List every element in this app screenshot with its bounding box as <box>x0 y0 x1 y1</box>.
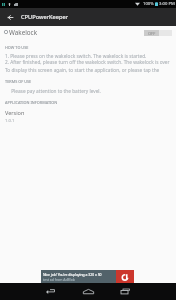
button[interactable]: Home <box>77 286 99 297</box>
staticText: To display this screen again, to start t… <box>5 67 173 73</box>
staticText: APPLICATION INFORMATION <box>5 100 58 105</box>
staticText: TERMS OF USE <box>5 79 32 84</box>
staticText: Wakelock <box>9 28 37 37</box>
staticText: CPUPowerKeeper <box>21 13 68 21</box>
button[interactable]: Navigate up <box>0 8 21 26</box>
staticText: Nice job! You're displaying a 320 x 50 <box>43 272 102 277</box>
button[interactable]: Nice job! You're displaying a 320 x 50 <box>41 270 134 283</box>
staticText: Version <box>5 109 25 116</box>
staticText: 3:00 PM <box>159 1 175 7</box>
button[interactable]: Back <box>41 286 61 297</box>
staticText: Please pay attention to the battery leve… <box>5 88 101 94</box>
staticText: 100% <box>143 1 154 7</box>
staticText: 1.0.1 <box>5 118 15 124</box>
button[interactable]: Wakelock <box>0 26 176 38</box>
button[interactable]: Recent apps <box>115 286 135 297</box>
staticText: HOW TO USE <box>5 45 29 50</box>
staticText: 1. Please press on the wakelock switch. … <box>5 53 147 59</box>
staticText: OFF <box>148 31 156 36</box>
staticText: 2. After finished, please turn off the w… <box>5 59 170 65</box>
staticText: test ad from AdMob <box>43 277 75 282</box>
